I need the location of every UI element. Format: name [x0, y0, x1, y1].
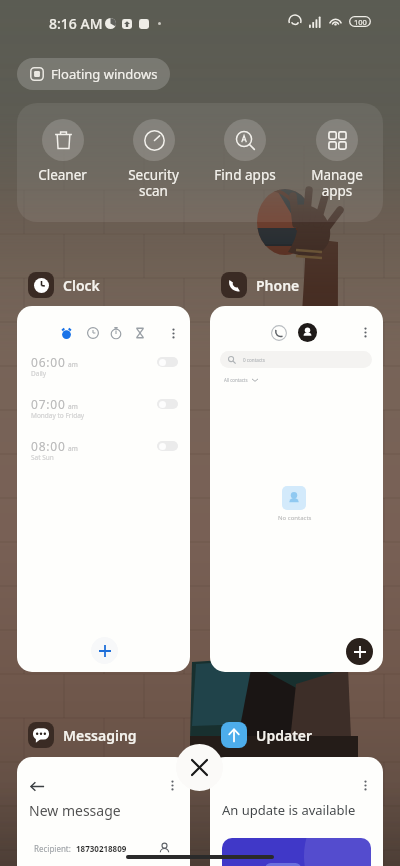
button[interactable]: Updater: [221, 722, 313, 748]
button[interactable]: Close all: [176, 744, 223, 791]
staticText: Recipient:: [34, 843, 71, 854]
staticText: Daily: [31, 369, 47, 378]
staticText: 18730218809: [76, 843, 127, 854]
button[interactable]: Add contact: [346, 638, 373, 665]
staticText: 06:00: [31, 354, 66, 370]
staticText: Sat Sun: [31, 453, 54, 462]
staticText: Cleaner: [38, 166, 87, 184]
staticText: Monday to Friday: [31, 411, 85, 420]
staticText: Phone: [256, 276, 300, 295]
staticText: Messaging: [63, 726, 137, 745]
staticText: All contacts: [224, 377, 248, 383]
staticText: Floating windows: [51, 65, 158, 83]
staticText: Find apps: [214, 166, 276, 184]
button[interactable]: Messaging: [28, 722, 137, 748]
staticText: 8:16 AM: [49, 14, 103, 33]
button[interactable]: [157, 357, 178, 367]
staticText: am: [68, 360, 78, 369]
button[interactable]: 07:00: [17, 396, 190, 426]
staticText: An update is available: [222, 801, 356, 819]
button[interactable]: Floating windows: [17, 58, 170, 90]
staticText: 07:00: [31, 396, 66, 412]
button[interactable]: Add alarm: [91, 637, 118, 664]
button[interactable]: Pick contact: [158, 842, 171, 855]
button[interactable]: [157, 399, 178, 409]
staticText: New message: [29, 801, 121, 820]
staticText: am: [68, 444, 78, 453]
button[interactable]: Clock: [28, 272, 100, 298]
staticText: Clock: [63, 276, 100, 295]
staticText: Security scan: [128, 166, 179, 200]
button[interactable]: Phone: [221, 272, 300, 298]
button[interactable]: Find apps: [199, 119, 291, 184]
button[interactable]: Back: [17, 757, 190, 866]
button[interactable]: Security scan: [108, 119, 199, 200]
button[interactable]: 08:00: [17, 438, 190, 468]
staticText: Manage apps: [311, 166, 363, 200]
staticText: 0 contacts: [243, 357, 265, 363]
button[interactable]: [298, 323, 317, 342]
button[interactable]: 06:00: [17, 354, 190, 384]
button[interactable]: 0 contacts: [210, 306, 383, 672]
button[interactable]: 06:00: [17, 306, 190, 672]
button[interactable]: 0 contacts: [220, 351, 372, 368]
button[interactable]: An update is available: [210, 757, 383, 866]
staticText: Updater: [256, 726, 313, 745]
button[interactable]: Back: [30, 779, 45, 794]
staticText: 08:00: [31, 438, 66, 454]
button[interactable]: Manage apps: [291, 119, 383, 200]
button[interactable]: Cleaner: [17, 119, 108, 184]
button[interactable]: [157, 441, 178, 451]
staticText: am: [68, 402, 78, 411]
staticText: No contacts: [278, 514, 312, 522]
staticText: 100: [354, 17, 367, 27]
